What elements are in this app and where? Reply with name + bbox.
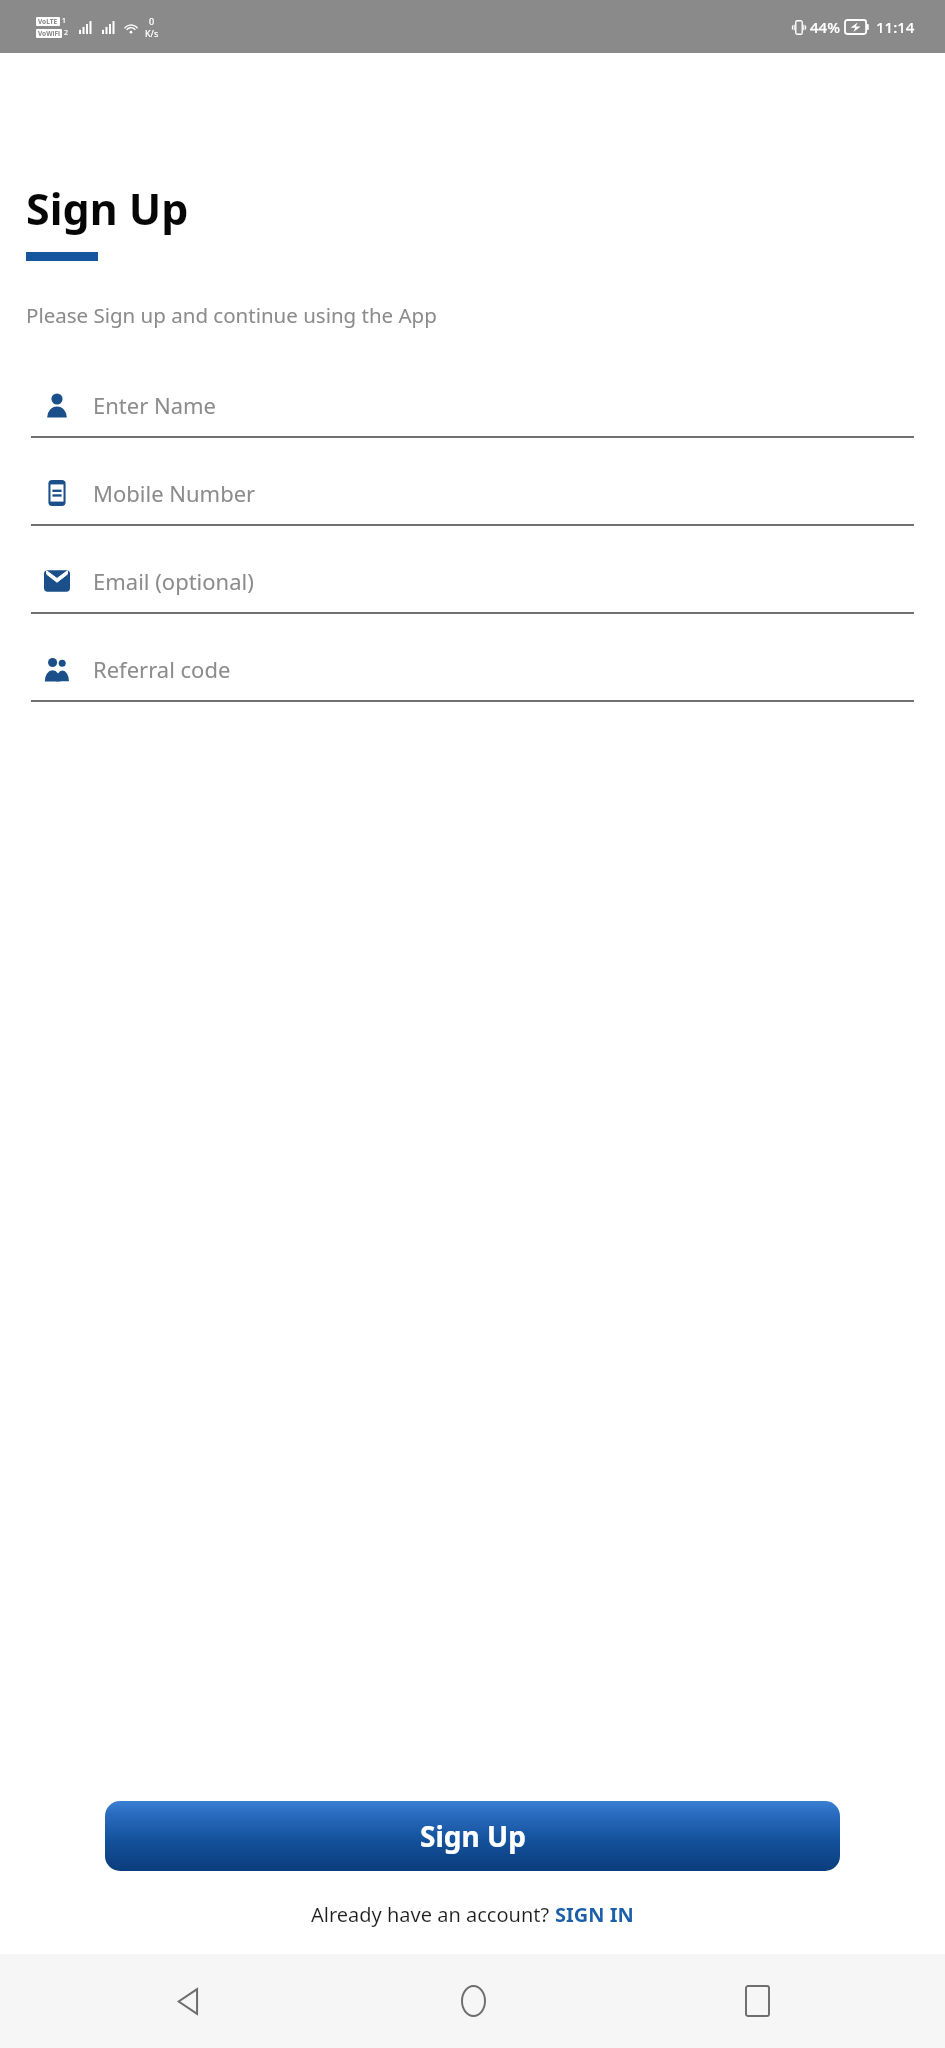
staticText: VoWiFi [38,29,60,38]
staticText: 0 [149,15,155,27]
staticText: 11:14 [876,17,915,37]
staticText: VoLTE [38,17,58,26]
button[interactable]: Enter Name [31,374,914,438]
staticText: Already have an account? [311,1901,555,1928]
staticText: 1 [62,16,67,26]
button[interactable]: Mobile Number [31,462,914,526]
button[interactable]: SIGN IN [555,1901,634,1928]
staticText: 44% [810,17,840,37]
staticText: K/s [145,27,159,39]
staticText: Referral code [93,654,231,684]
staticText: Email (optional) [93,566,254,596]
staticText: Mobile Number [93,478,256,508]
button[interactable]: Back [152,1964,226,2038]
staticText: Sign Up [26,179,189,238]
button[interactable]: Email (optional) [31,550,914,614]
staticText: 2 [64,28,69,38]
staticText: Enter Name [93,390,217,420]
staticText: SIGN IN [555,1901,634,1928]
staticText: Please Sign up and continue using the Ap… [26,301,437,329]
button[interactable]: Recent apps [720,1964,794,2038]
button[interactable]: Home [436,1964,510,2038]
button[interactable]: Referral code [31,638,914,702]
staticText: Sign Up [420,1817,526,1855]
button[interactable]: Sign Up [105,1801,840,1871]
